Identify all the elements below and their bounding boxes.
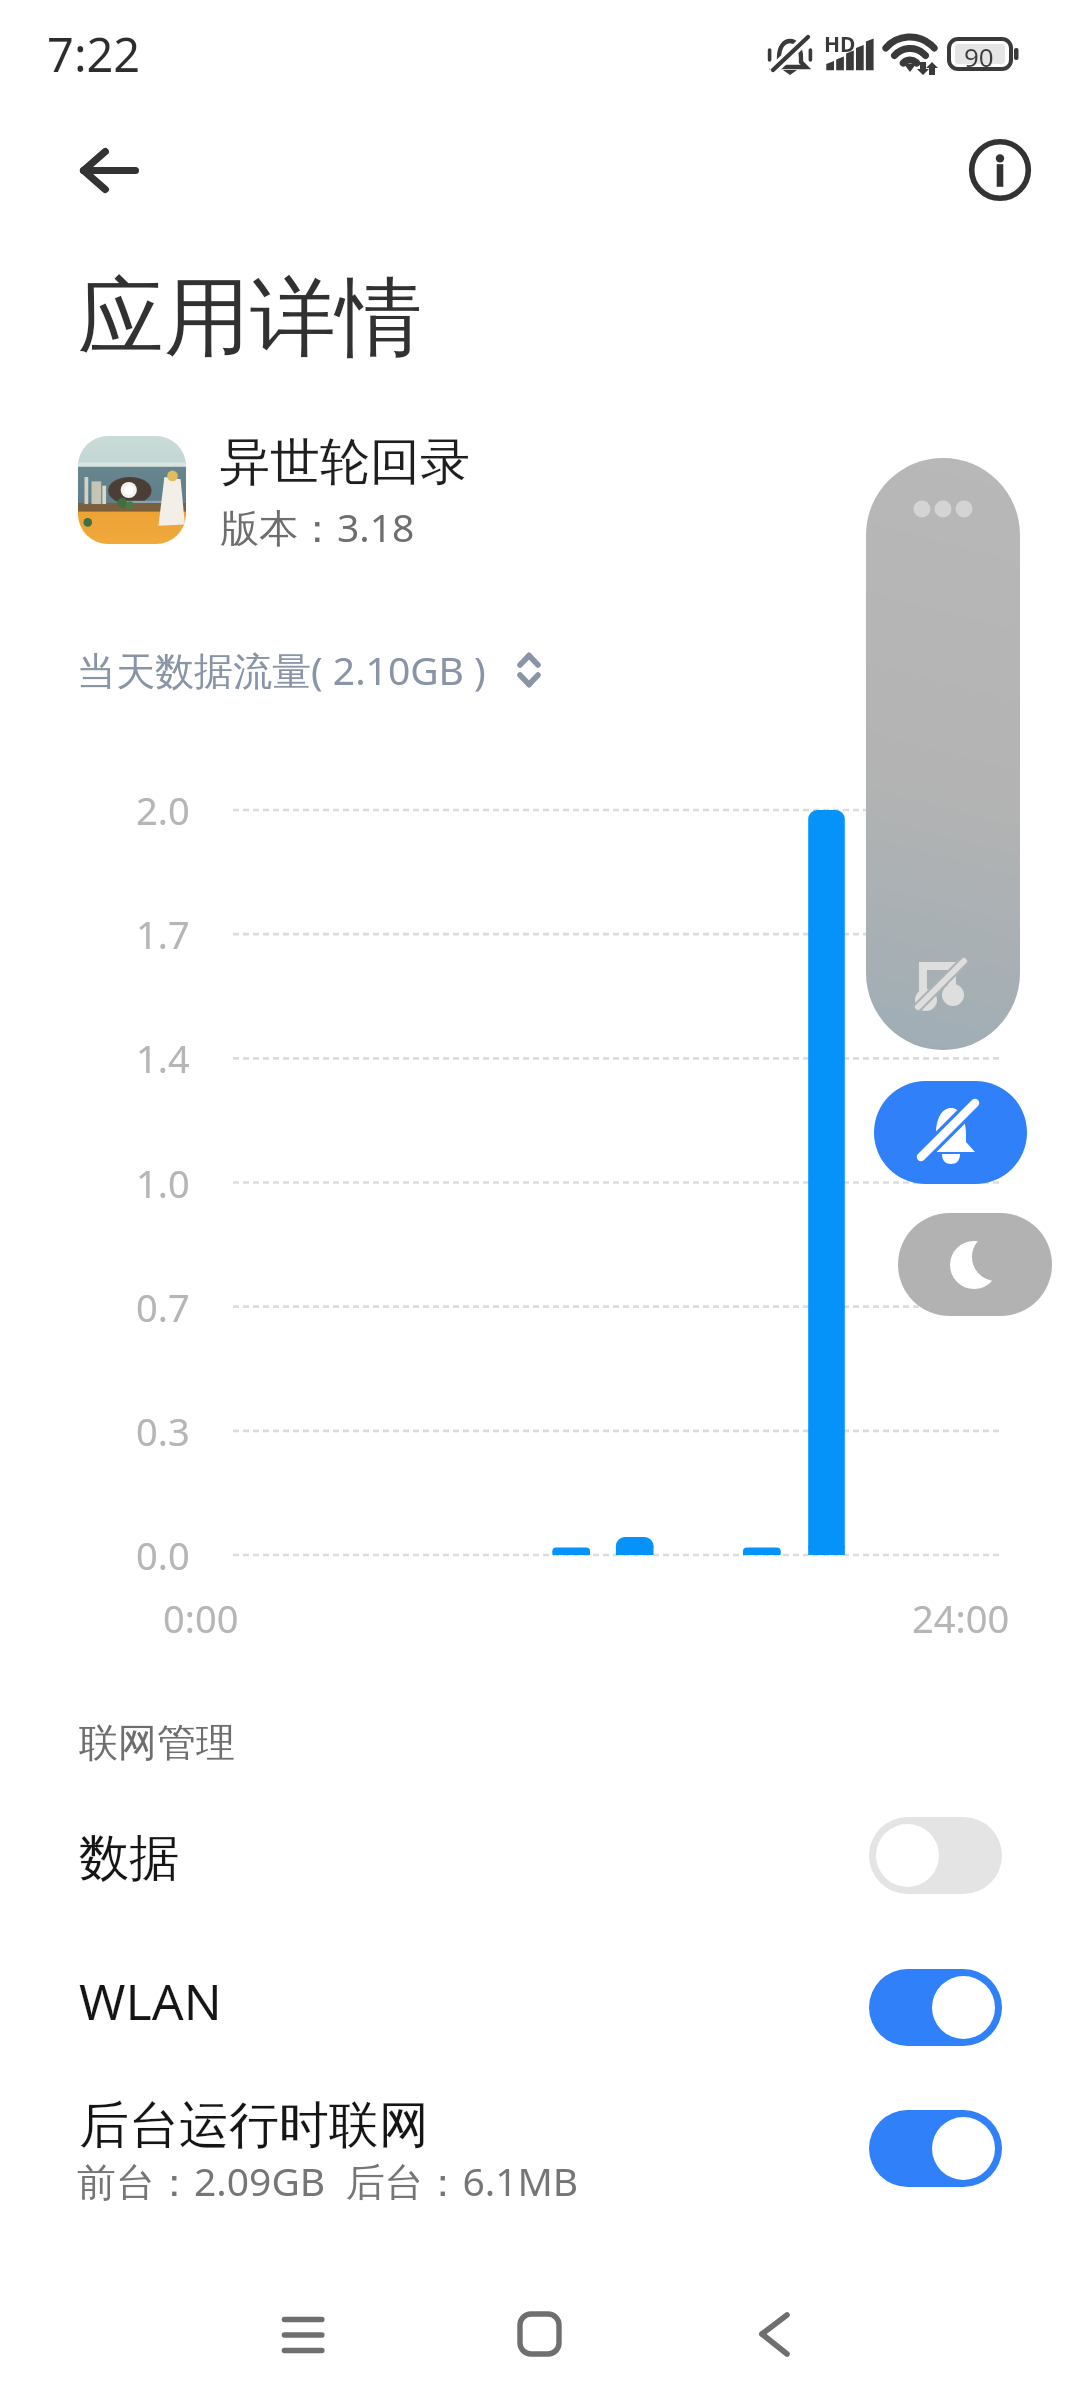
staticText: 异世轮回录 — [220, 431, 470, 494]
staticText: WLAN — [79, 1967, 222, 2035]
button[interactable]: Silent mode — [874, 1081, 1027, 1184]
staticText: 后台运行时联网 — [79, 2094, 429, 2157]
button[interactable]: Do not disturb — [898, 1213, 1052, 1316]
staticText: 7:22 — [47, 22, 141, 86]
button[interactable]: Back — [55, 127, 145, 217]
button[interactable]: Volume — [866, 458, 1020, 1050]
staticText: 应用详情 — [78, 264, 422, 372]
button[interactable]: Disabled — [869, 1817, 1002, 1894]
button[interactable]: WLAN — [0, 1948, 1080, 2066]
button[interactable]: Enabled — [869, 1969, 1002, 2046]
staticText: 1.0 — [136, 1157, 190, 1209]
staticText: 联网管理 — [79, 1718, 235, 1767]
staticText: 前台：2.09GB 后台：6.1MB — [77, 2154, 579, 2207]
button[interactable]: Recent apps — [264, 2294, 342, 2372]
button[interactable]: Enabled — [869, 2110, 1002, 2187]
staticText: 数据 — [79, 1827, 179, 1890]
button[interactable]: 后台运行时联网 — [0, 2062, 1080, 2222]
button[interactable]: Back — [736, 2294, 814, 2372]
staticText: 1.7 — [136, 908, 190, 960]
staticText: 90 — [964, 39, 994, 74]
staticText: 0.0 — [136, 1529, 190, 1581]
staticText: 0.3 — [136, 1405, 190, 1457]
button[interactable]: 当天数据流量( 2.10GB ) — [77, 643, 542, 696]
staticText: 当天数据流量( 2.10GB ) — [77, 643, 486, 696]
staticText: 24:00 — [912, 1592, 1010, 1644]
staticText: 0.7 — [136, 1281, 190, 1333]
staticText: 1.4 — [136, 1032, 190, 1084]
button[interactable]: App info — [956, 126, 1044, 214]
staticText: 0:00 — [163, 1592, 239, 1644]
staticText: HD — [824, 30, 856, 59]
button[interactable]: 数据 — [0, 1796, 1080, 1914]
staticText: 2.0 — [136, 784, 190, 836]
button[interactable]: Home — [500, 2294, 578, 2372]
staticText: 版本：3.18 — [220, 500, 415, 553]
